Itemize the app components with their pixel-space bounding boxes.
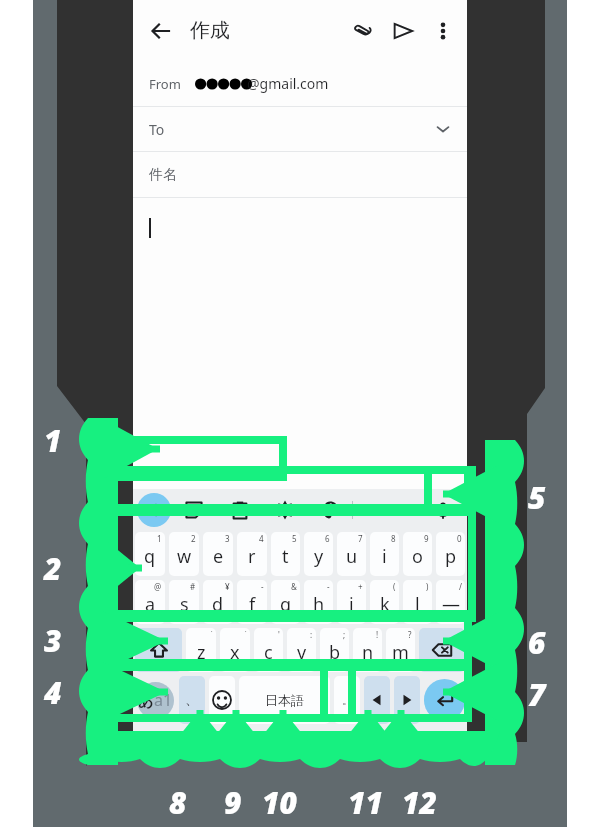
button[interactable]: Enter: [424, 676, 465, 724]
staticText: u: [346, 544, 358, 569]
button[interactable]: 4: [237, 532, 267, 576]
button[interactable]: Backspace: [419, 628, 465, 672]
staticText: h: [313, 592, 325, 617]
button[interactable]: More options: [423, 11, 463, 51]
button[interactable]: Emoji: [209, 676, 235, 724]
button[interactable]: 7: [337, 532, 366, 576]
staticText: n: [362, 640, 374, 665]
button[interactable]: 6: [304, 532, 333, 576]
staticText: i: [382, 544, 387, 569]
staticText: f: [249, 592, 256, 617]
button[interactable]: 。: [334, 676, 360, 724]
button[interactable]: Move cursor right: [394, 676, 420, 724]
staticText: ;: [343, 629, 346, 640]
staticText: 3: [225, 533, 230, 544]
staticText: 11: [348, 782, 383, 823]
button[interactable]: @: [135, 580, 165, 624]
button[interactable]: 1: [135, 532, 165, 576]
button[interactable]: To: [133, 107, 467, 151]
staticText: 6: [528, 622, 546, 663]
button[interactable]: 件名: [133, 152, 467, 197]
button[interactable]: Settings: [262, 489, 307, 530]
staticText: 日本語: [265, 692, 304, 708]
staticText: 2: [191, 533, 196, 544]
staticText: &: [291, 581, 297, 592]
staticText: 作成: [190, 18, 230, 43]
staticText: From: [149, 75, 181, 93]
staticText: 。: [342, 693, 353, 707]
staticText: ': [278, 629, 280, 640]
button[interactable]: ˙: [220, 628, 250, 672]
button[interactable]: 3: [203, 532, 233, 576]
button[interactable]: &: [271, 580, 300, 624]
button[interactable]: ): [403, 580, 432, 624]
staticText: e: [213, 544, 224, 569]
staticText: a1: [154, 689, 173, 711]
staticText: 9: [224, 782, 242, 823]
button[interactable]: Themes: [307, 489, 352, 530]
staticText: ˙: [211, 629, 213, 640]
staticText: —: [442, 592, 460, 617]
staticText: 12: [402, 782, 437, 823]
button[interactable]: (: [370, 580, 399, 624]
button[interactable]: 2: [169, 532, 199, 576]
staticText: 4: [259, 533, 264, 544]
staticText: 4: [44, 672, 62, 713]
staticText: 5: [292, 533, 297, 544]
staticText: 1: [44, 420, 62, 461]
staticText: :: [310, 629, 313, 640]
button[interactable]: More: [353, 489, 398, 530]
button[interactable]: Collapse toolbar: [137, 493, 171, 527]
staticText: d: [212, 592, 224, 617]
staticText: (: [393, 581, 396, 592]
button[interactable]: 8: [370, 532, 399, 576]
staticText: c: [264, 640, 273, 665]
staticText: b: [329, 640, 341, 665]
button[interactable]: ¥: [203, 580, 233, 624]
button[interactable]: ;: [320, 628, 349, 672]
button[interactable]: 5: [271, 532, 300, 576]
staticText: o: [412, 544, 423, 569]
button[interactable]: 日本語: [239, 676, 330, 724]
button[interactable]: Voice input: [423, 489, 463, 530]
button[interactable]: !: [353, 628, 382, 672]
button[interactable]: #: [169, 580, 199, 624]
staticText: 7: [528, 674, 546, 715]
staticText: 3: [44, 620, 62, 661]
staticText: 8: [391, 533, 396, 544]
button[interactable]: Back: [141, 11, 181, 51]
button[interactable]: あ: [135, 676, 175, 724]
button[interactable]: Clipboard: [217, 489, 262, 530]
staticText: 0: [457, 533, 462, 544]
button[interactable]: Move cursor left: [364, 676, 390, 724]
button[interactable]: 、: [179, 676, 205, 724]
button[interactable]: ˙: [186, 628, 216, 672]
button[interactable]: 9: [403, 532, 432, 576]
staticText: g: [280, 592, 292, 617]
staticText: y: [314, 544, 324, 569]
staticText: -: [261, 581, 264, 592]
staticText: 10: [262, 782, 297, 823]
button[interactable]: Shift: [135, 628, 182, 672]
button[interactable]: From: [133, 61, 467, 106]
button[interactable]: 0: [436, 532, 465, 576]
staticText: k: [380, 592, 390, 617]
button[interactable]: Stickers: [171, 489, 217, 530]
staticText: ¥: [225, 581, 230, 592]
button[interactable]: +: [337, 580, 366, 624]
button[interactable]: -: [237, 580, 267, 624]
staticText: j: [349, 592, 354, 617]
staticText: t: [282, 544, 289, 569]
staticText: 6: [325, 533, 330, 544]
staticText: 2: [44, 548, 62, 589]
staticText: x: [230, 640, 240, 665]
button[interactable]: -: [304, 580, 333, 624]
button[interactable]: /: [436, 580, 465, 624]
button[interactable]: :: [287, 628, 316, 672]
button[interactable]: Send: [383, 11, 423, 51]
button[interactable]: ': [254, 628, 283, 672]
button[interactable]: ?: [386, 628, 415, 672]
button[interactable]: Attach: [343, 11, 383, 51]
staticText: !: [376, 629, 379, 640]
staticText: +: [358, 581, 363, 592]
